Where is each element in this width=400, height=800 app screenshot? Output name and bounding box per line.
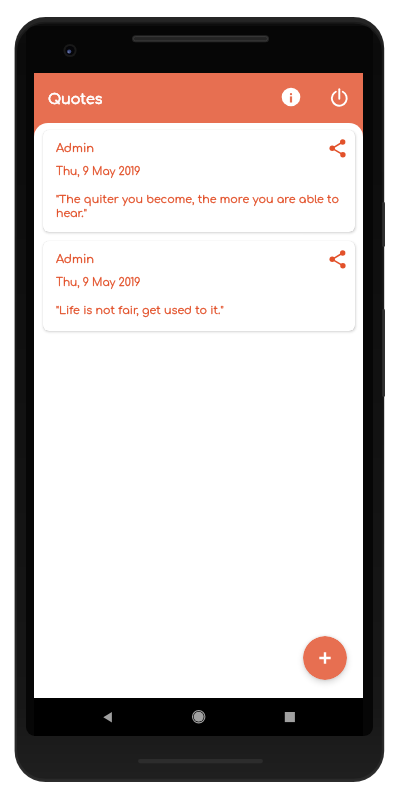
staticText: Quotes [48,91,103,107]
staticText: "The quiter you become, the more you are… [56,193,344,219]
button[interactable]: Share [326,247,350,271]
staticText: Admin [56,142,94,155]
staticText: Admin [56,142,94,155]
staticText: Thu, 9 May 2019 [56,166,141,178]
button[interactable]: Info [279,85,303,109]
staticText: "The quiter you become, the more you are… [56,193,344,219]
staticText: "Life is not fair, get used to it." [56,304,224,316]
staticText: Admin [56,253,94,266]
button[interactable]: Admin [43,130,355,232]
staticText: Thu, 9 May 2019 [56,166,141,178]
staticText: Admin [56,253,94,266]
button[interactable]: Log out [327,86,351,110]
button[interactable]: Share [326,136,350,160]
staticText: Thu, 9 May 2019 [56,277,141,289]
button[interactable]: Admin [43,241,355,331]
button[interactable]: Add quote [303,636,347,680]
staticText: Thu, 9 May 2019 [56,277,141,289]
staticText: "Life is not fair, get used to it." [56,304,224,316]
staticText: Quotes [48,91,103,107]
